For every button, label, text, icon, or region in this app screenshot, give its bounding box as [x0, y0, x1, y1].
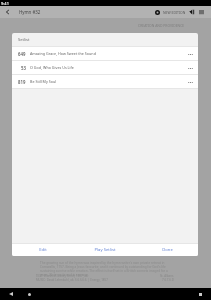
staticText: St. Albans [160, 274, 174, 278]
button[interactable]: Edit [12, 244, 74, 256]
button[interactable]: Play Setlist [74, 244, 136, 256]
staticText: Setlist [18, 37, 30, 42]
button[interactable]: Recent apps [195, 289, 205, 299]
staticText: The growing sun of the hymn was inspired… [40, 261, 175, 277]
staticText: TEXT: Words of Sidney Smith, 1857, alt. [36, 274, 89, 278]
button[interactable]: Home [24, 289, 34, 299]
staticText: 7.6.7.6.D [162, 278, 174, 282]
staticText: NEW EDITION [163, 10, 186, 15]
staticText: 53 [21, 65, 26, 71]
button[interactable]: More options [185, 77, 195, 87]
button[interactable]: Back [6, 289, 16, 299]
staticText: Done [162, 247, 173, 253]
button[interactable]: More options [185, 49, 195, 59]
button[interactable]: 649 [12, 47, 198, 60]
button[interactable]: Done [136, 244, 198, 256]
button[interactable]: Setlist [151, 6, 163, 18]
button[interactable]: More options [185, 63, 195, 73]
staticText: MUSIC: David Lehmkuhl, alt. 6.6.6.6.6. |… [36, 278, 108, 282]
staticText: Edit [39, 247, 47, 253]
staticText: Amazing Grace, How Sweet the Sound [30, 51, 96, 56]
button[interactable]: Back [0, 6, 14, 18]
staticText: 649 [18, 51, 26, 57]
button[interactable]: 819 [12, 75, 198, 88]
staticText: Be Still My Soul [30, 79, 57, 84]
staticText: Hymn #32 [19, 9, 41, 15]
staticText: CREATION AND PROVIDENCE [138, 23, 185, 28]
button[interactable]: 53 [12, 61, 198, 74]
button[interactable]: Volume [186, 6, 198, 18]
button[interactable]: Menu [195, 6, 207, 18]
staticText: O God, Who Gives Us Life [30, 65, 74, 70]
staticText: 9:41 [1, 1, 9, 6]
staticText: Play Setlist [94, 247, 116, 253]
staticText: 819 [18, 79, 26, 85]
